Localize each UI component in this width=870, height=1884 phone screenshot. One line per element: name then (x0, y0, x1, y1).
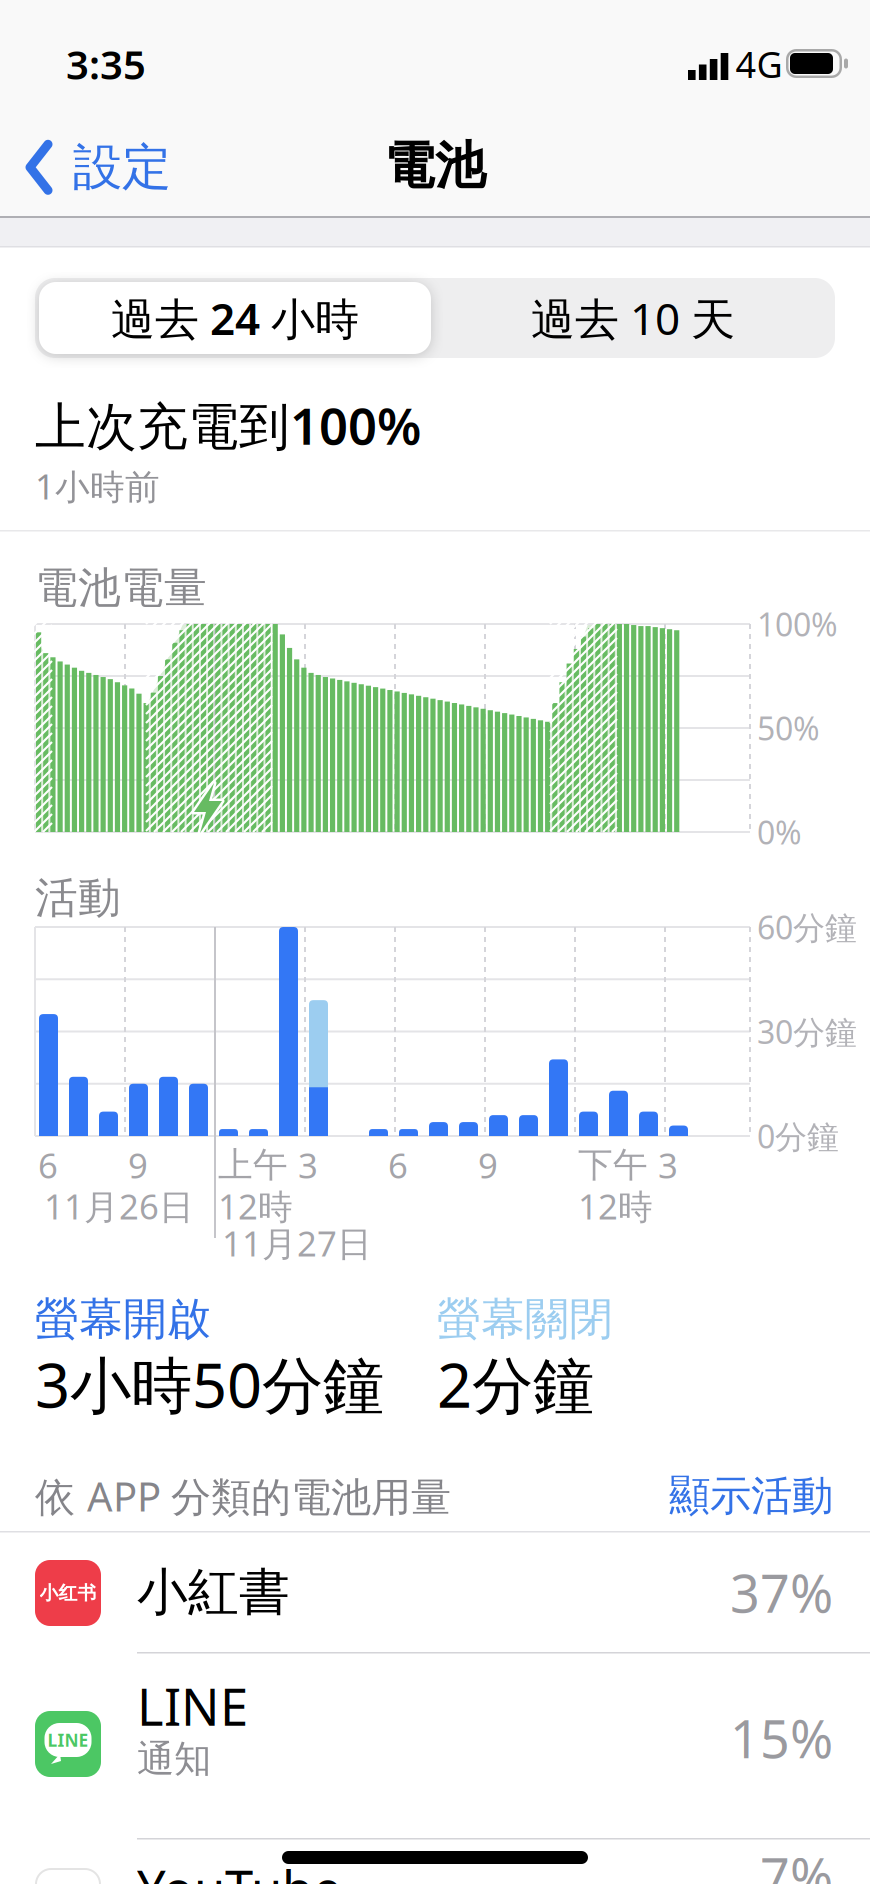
staticText: 設定 (73, 137, 171, 198)
staticText: 30分鐘 (757, 1010, 857, 1053)
staticText: 上次充電到100% (35, 391, 421, 459)
button[interactable]: 小红书 (0, 1533, 870, 1652)
staticText: 3:35 (66, 37, 146, 90)
staticText: 11月26日 (44, 1183, 194, 1229)
staticText: 螢幕關閉 (437, 1292, 613, 1346)
staticText: 6 (388, 1142, 408, 1188)
staticText: 上午 (218, 1144, 288, 1186)
staticText: 9 (128, 1142, 148, 1188)
staticText: LINE (47, 1728, 88, 1751)
staticText: 0分鐘 (757, 1115, 839, 1157)
staticText: 60分鐘 (757, 906, 857, 948)
staticText: 3 (298, 1142, 318, 1188)
staticText: 3 (658, 1142, 678, 1188)
staticText: 小紅書 (137, 1561, 290, 1624)
staticText: LINE (137, 1672, 248, 1740)
staticText: 2分鐘 (437, 1343, 594, 1425)
staticText: YouTube (137, 1854, 342, 1884)
staticText: 4G (735, 40, 782, 88)
staticText: 11月27日 (222, 1220, 372, 1266)
staticText: 100% (757, 603, 838, 645)
staticText: 顯示活動 (669, 1471, 833, 1521)
staticText: 電池電量 (35, 562, 207, 614)
button[interactable]: 過去 10 天 (435, 280, 831, 356)
button[interactable]: 顯示活動 (613, 1471, 833, 1521)
staticText: 12時 (578, 1183, 653, 1229)
button[interactable]: YouTube (0, 1840, 870, 1884)
staticText: 7% (760, 1841, 833, 1884)
staticText: 螢幕開啟 (35, 1292, 211, 1346)
button[interactable]: 返回設定 (27, 137, 171, 198)
staticText: 9 (478, 1142, 498, 1188)
staticText: 0% (757, 811, 802, 853)
staticText: 50% (757, 707, 820, 749)
staticText: 通知 (137, 1736, 211, 1782)
staticText: 過去 24 小時 (111, 289, 359, 347)
staticText: 1小時前 (35, 463, 160, 509)
staticText: 3小時50分鐘 (35, 1343, 384, 1425)
staticText: 活動 (35, 872, 121, 924)
staticText: 37% (730, 1558, 833, 1627)
staticText: 15% (730, 1703, 833, 1773)
staticText: 下午 (578, 1144, 648, 1186)
staticText: 小红书 (39, 1581, 96, 1604)
button[interactable]: LINE (0, 1653, 870, 1838)
staticText: 12時 (218, 1183, 293, 1229)
staticText: 依 APP 分類的電池用量 (35, 1469, 451, 1522)
staticText: 過去 10 天 (531, 289, 735, 347)
staticText: 6 (38, 1142, 58, 1188)
button[interactable]: 過去 24 小時 (39, 282, 431, 354)
staticText: 電池 (384, 135, 486, 197)
